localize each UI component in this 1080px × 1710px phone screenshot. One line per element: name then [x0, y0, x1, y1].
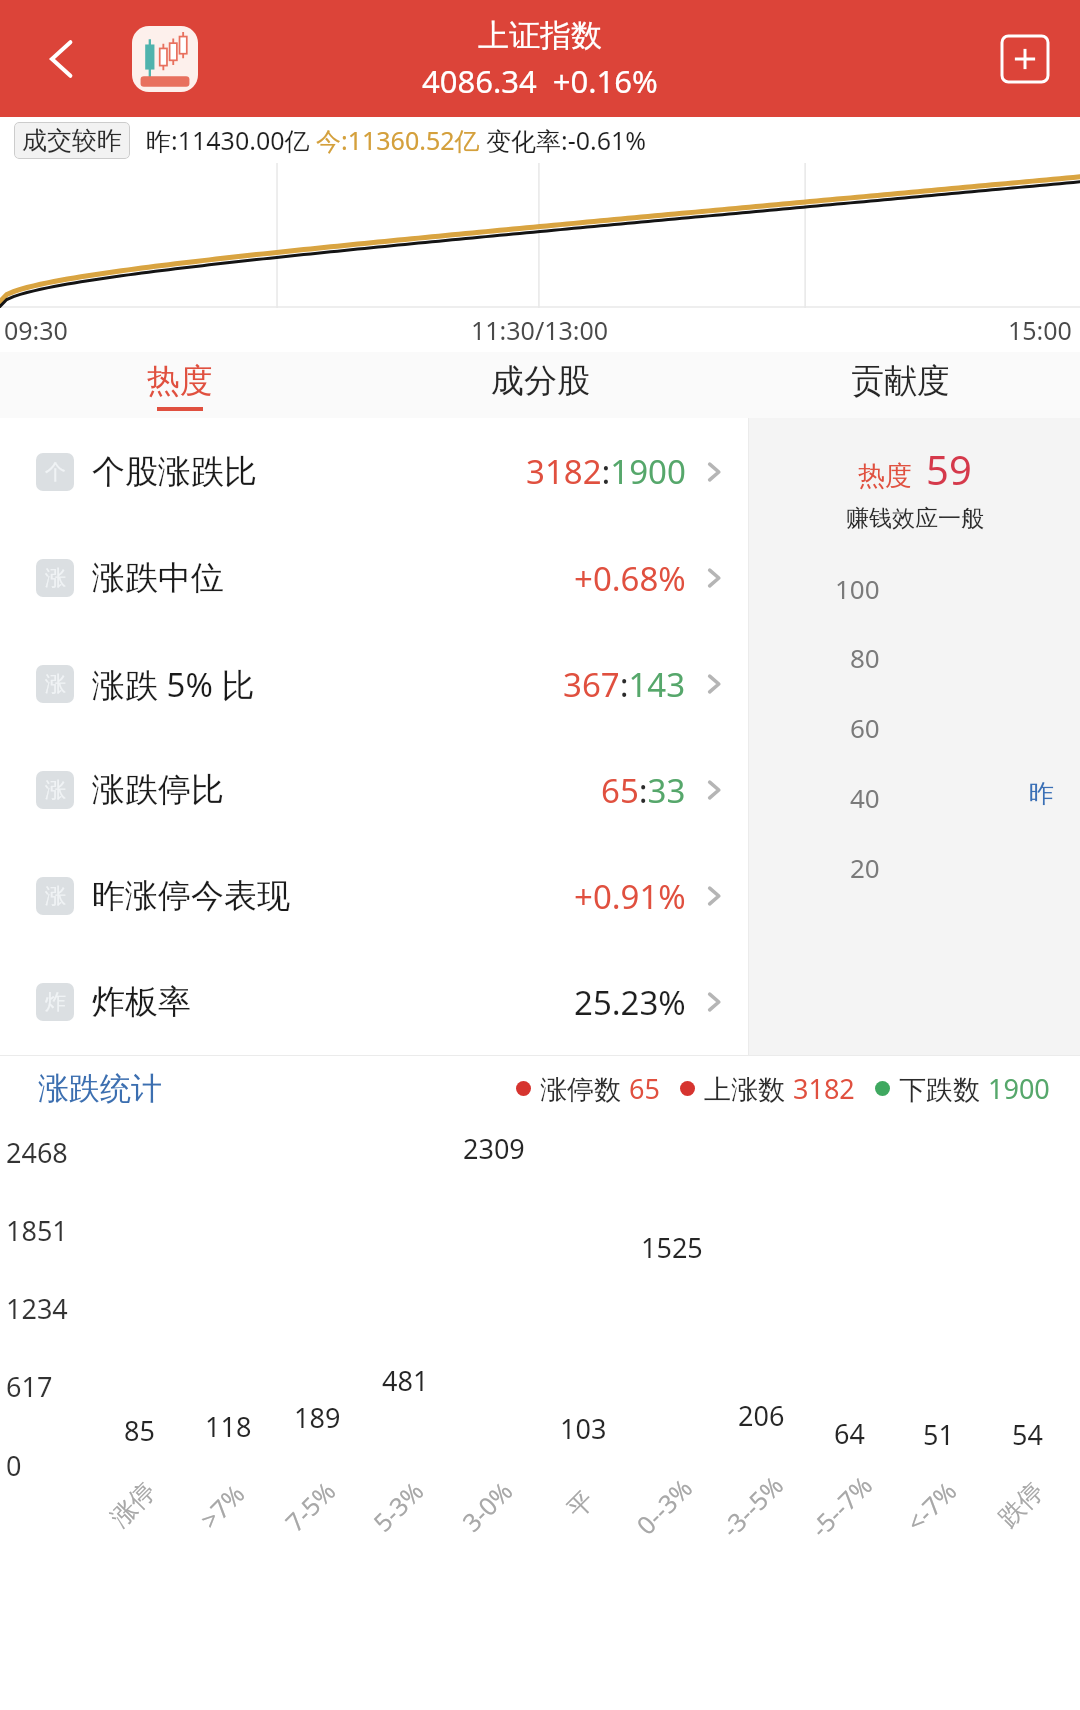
staticText: 7-5% [277, 1473, 343, 1539]
staticText: 成分股 [491, 360, 590, 402]
staticText: 15:00 [1008, 313, 1072, 347]
staticText: 涨跌中位 [92, 557, 224, 599]
staticText: 80 [850, 640, 880, 675]
button[interactable]: App logo [132, 26, 198, 92]
staticText: 09:30 [4, 313, 68, 347]
staticText: 617 [6, 1368, 53, 1405]
button[interactable]: 成分股 [360, 352, 720, 418]
staticText: 贡献度 [851, 360, 950, 402]
staticText: 4086.34 +0.16% [422, 60, 658, 102]
staticText: 189 [294, 1399, 341, 1436]
staticText: 481 [382, 1362, 429, 1399]
staticText: 炸 [45, 989, 66, 1015]
staticText: 1851 [6, 1212, 68, 1249]
button[interactable]: 热度 [0, 352, 360, 418]
staticText: 涨跌停比 [92, 769, 224, 811]
staticText: 2468 [6, 1134, 68, 1171]
staticText: 涨跌 5% 比 [92, 662, 255, 707]
staticText: 昨:11430.00亿 今:11360.52亿 变化率:-0.61% [146, 123, 647, 157]
button[interactable]: 成交较昨 [14, 122, 130, 159]
button[interactable]: 涨 [0, 631, 748, 737]
staticText: 20 [850, 850, 880, 885]
staticText: 367:143 [563, 662, 686, 707]
staticText: 3182 [793, 1070, 855, 1107]
staticText: -3--5% [714, 1468, 790, 1544]
staticText: 热度 59 [858, 442, 972, 496]
staticText: 40 [850, 780, 880, 815]
staticText: 赚钱效应一般 [846, 504, 984, 533]
staticText: 3-0% [454, 1473, 520, 1539]
staticText: 1525 [641, 1229, 703, 1266]
staticText: 1900 [988, 1070, 1050, 1107]
staticText: 个 [45, 459, 66, 485]
staticText: 65:33 [601, 768, 686, 813]
button[interactable]: 涨 [0, 737, 748, 843]
button[interactable]: Add to watchlist [992, 26, 1058, 92]
button[interactable]: Back [24, 21, 100, 97]
staticText: 上涨数 [704, 1070, 793, 1107]
staticText: 118 [205, 1408, 252, 1445]
staticText: +0.68% [574, 556, 686, 601]
staticText: 下跌数 [899, 1070, 988, 1107]
staticText: 11:30/13:00 [471, 313, 609, 347]
staticText: 上证指数 [478, 16, 602, 55]
staticText: +0.91% [574, 874, 686, 919]
staticText: 103 [560, 1410, 607, 1447]
button[interactable]: 涨 [0, 525, 748, 631]
staticText: 5-3% [365, 1473, 431, 1539]
button[interactable]: 贡献度 [720, 352, 1080, 418]
staticText: 昨 [1029, 778, 1054, 809]
staticText: 个股涨跌比 [92, 451, 257, 493]
staticText: 1234 [6, 1290, 68, 1327]
staticText: 3182:1900 [526, 449, 686, 494]
staticText: 85 [124, 1412, 155, 1449]
staticText: 平 [561, 1485, 600, 1524]
button[interactable]: 炸 [0, 949, 748, 1055]
staticText: 涨 [45, 671, 66, 697]
staticText: 成交较昨 [22, 125, 122, 156]
staticText: 涨跌统计 [38, 1069, 162, 1108]
staticText: 热度 [147, 360, 213, 402]
button[interactable]: 个 [0, 418, 748, 525]
staticText: >7% [192, 1476, 252, 1536]
staticText: 涨 [45, 777, 66, 803]
staticText: 64 [834, 1415, 865, 1452]
staticText: 跌停 [992, 1476, 1050, 1533]
staticText: 炸板率 [92, 981, 191, 1023]
staticText: 65 [629, 1070, 660, 1107]
staticText: 25.23% [574, 980, 686, 1025]
staticText: 涨 [45, 883, 66, 909]
staticText: <-7% [898, 1473, 964, 1539]
staticText: 2309 [463, 1130, 525, 1167]
staticText: 0 [6, 1447, 22, 1484]
staticText: 昨涨停今表现 [92, 875, 290, 917]
button[interactable]: 涨 [0, 843, 748, 949]
staticText: 涨停数 [540, 1070, 629, 1107]
staticText: 54 [1012, 1416, 1043, 1453]
staticText: 涨 [45, 565, 66, 591]
staticText: 涨停 [104, 1476, 162, 1533]
staticText: 60 [850, 710, 880, 745]
staticText: 0--3% [629, 1471, 699, 1541]
staticText: 51 [923, 1416, 954, 1453]
staticText: 206 [738, 1397, 785, 1434]
staticText: -5--7% [803, 1468, 879, 1544]
staticText: 100 [835, 571, 880, 606]
